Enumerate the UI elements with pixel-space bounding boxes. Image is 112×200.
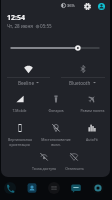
button[interactable]: Вертикальная (1, 119, 38, 148)
button[interactable]: AutoFit (74, 119, 110, 148)
staticText: T-Mobile (12, 108, 27, 113)
staticText: 12:54 (7, 13, 25, 23)
button[interactable]: Phone (2, 180, 18, 196)
button[interactable]: Messages (68, 180, 84, 196)
staticText: Местоположение (41, 137, 71, 142)
button[interactable]: Camera (90, 180, 106, 196)
button[interactable]: T-Mobile (1, 90, 38, 119)
staticText: ориентация (9, 142, 30, 147)
staticText: Вертикальная (8, 137, 32, 142)
button[interactable]: Фонарик (38, 90, 74, 119)
button[interactable]: Отключить (62, 148, 86, 177)
staticText: 36% (67, 3, 75, 8)
button[interactable]: Settings (82, 1, 92, 11)
staticText: Bluetooth (69, 80, 91, 86)
staticText: выкл. (51, 142, 61, 147)
button[interactable]: Contacts (24, 180, 40, 196)
staticText: Фонарик (48, 108, 64, 113)
staticText: 05:55 (40, 23, 52, 29)
button[interactable]: Brightness (1, 43, 110, 53)
button[interactable]: Beeline (1, 55, 55, 77)
staticText: Beeline (18, 80, 34, 86)
button[interactable]: Местоположение (38, 119, 74, 148)
button[interactable]: Battery 36 percent (61, 3, 75, 8)
button[interactable]: Режим полета (74, 90, 110, 119)
button[interactable]: Точка доступа (26, 148, 62, 177)
button[interactable]: Bluetooth (55, 76, 110, 89)
staticText: Чт, 28 июня (7, 23, 33, 29)
staticText: AutoFit (86, 137, 98, 142)
button[interactable]: User profile (96, 1, 106, 11)
staticText: Режим полета (80, 108, 105, 113)
button[interactable]: All apps (46, 180, 62, 196)
staticText: Точка доступа (32, 166, 56, 171)
button[interactable]: Bluetooth (55, 55, 110, 77)
button[interactable]: Beeline (1, 76, 55, 89)
staticText: Отключить (65, 166, 84, 171)
